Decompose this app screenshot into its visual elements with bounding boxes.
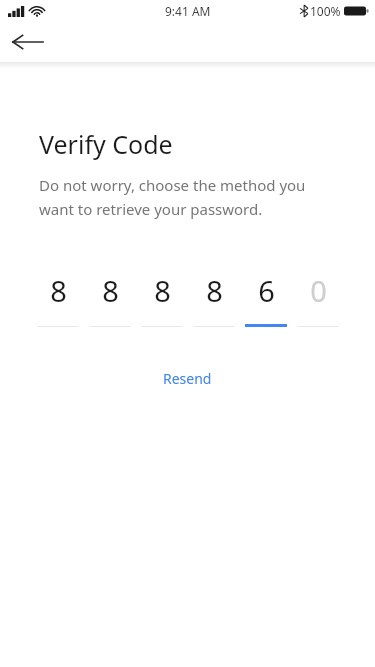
staticText: 9:41 AM xyxy=(165,3,211,19)
button[interactable]: 8 xyxy=(89,271,131,331)
staticText: 8 xyxy=(50,271,67,310)
staticText: 8 xyxy=(154,271,171,310)
button[interactable]: Resend xyxy=(151,363,224,394)
staticText: 8 xyxy=(102,271,119,310)
button[interactable]: 8 xyxy=(141,271,183,331)
staticText: Resend xyxy=(163,369,212,388)
button[interactable]: Back xyxy=(6,22,50,62)
staticText: 6 xyxy=(258,271,275,310)
staticText: Do not worry, choose the method you want… xyxy=(39,175,306,219)
button[interactable]: 8 xyxy=(37,271,79,331)
staticText: 0 xyxy=(310,271,327,310)
button[interactable]: 8 xyxy=(193,271,235,331)
button[interactable]: 6 xyxy=(245,271,287,331)
staticText: 100% xyxy=(310,3,341,19)
staticText: Verify Code xyxy=(39,127,173,161)
staticText: 8 xyxy=(206,271,223,310)
button[interactable]: 0 xyxy=(297,271,339,331)
